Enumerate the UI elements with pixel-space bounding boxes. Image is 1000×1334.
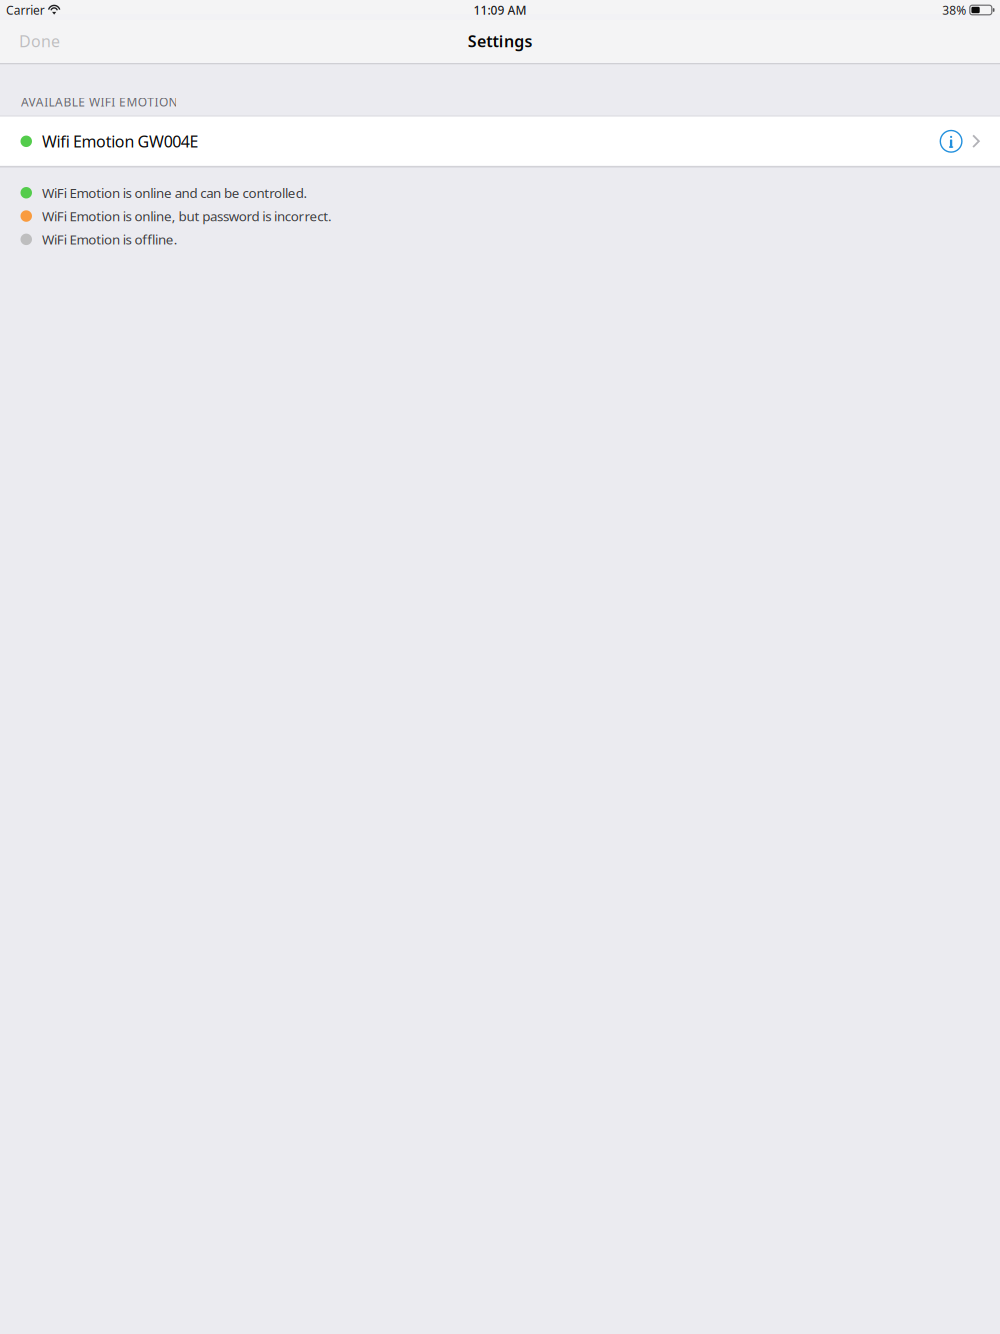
- staticText: Done: [19, 30, 60, 52]
- staticText: 38%: [942, 2, 966, 18]
- button[interactable]: Wifi Emotion GW004E info: [935, 119, 965, 163]
- button[interactable]: Wifi Emotion GW004E: [0, 117, 1000, 166]
- staticText: WiFi Emotion is online, but password is …: [42, 207, 332, 225]
- staticText: AVAILABLE WIFI EMOTION: [21, 94, 177, 110]
- staticText: WiFi Emotion is offline.: [42, 230, 178, 248]
- staticText: 11:09 AM: [473, 2, 526, 18]
- staticText: Settings: [468, 30, 532, 52]
- staticText: Carrier: [6, 2, 45, 18]
- staticText: Wifi Emotion GW004E: [42, 131, 198, 152]
- button[interactable]: Done: [0, 21, 74, 61]
- staticText: WiFi Emotion is online and can be contro…: [42, 184, 308, 202]
